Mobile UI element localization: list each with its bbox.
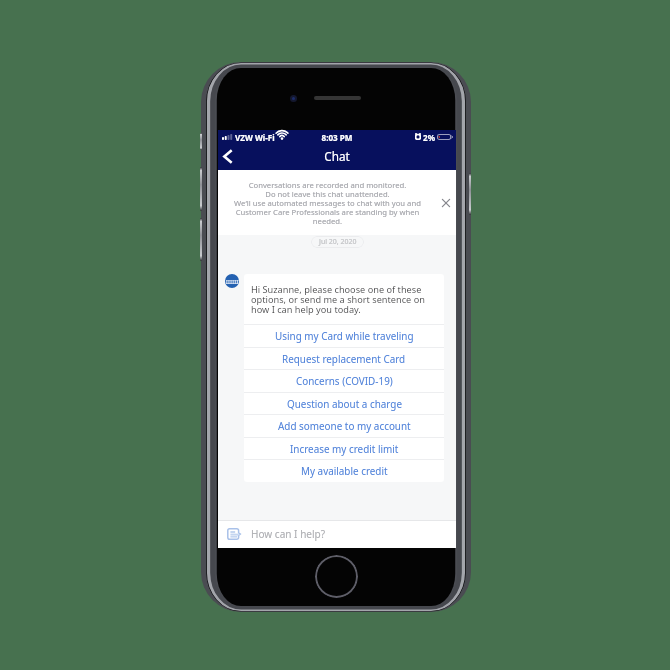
staticText: Question about a charge [287,397,402,410]
staticText: Jul 20, 2020 [319,237,357,247]
button[interactable]: Back [216,142,240,170]
staticText: 8:03 PM [218,132,456,143]
button[interactable]: Using my Card while traveling [244,324,444,347]
button[interactable]: Concerns (COVID-19) [244,369,444,392]
button[interactable]: Close [438,195,454,211]
button[interactable]: Request replacement Card [244,347,444,370]
staticText: Add someone to my account [278,419,411,432]
button[interactable]: Quick replies [225,526,243,542]
staticText: 2% [423,132,435,143]
staticText: Chat [218,148,456,164]
staticText: Using my Card while traveling [275,329,414,342]
button[interactable]: My available credit [244,459,444,482]
staticText: How can I help? [251,527,326,541]
staticText: Request replacement Card [282,352,406,365]
staticText: My available credit [301,464,388,477]
staticText: VZW Wi-Fi [235,132,275,143]
staticText: Increase my credit limit [290,442,399,455]
button[interactable]: Add someone to my account [244,414,444,437]
staticText: Conversations are recorded and monitored… [234,180,421,226]
staticText: Hi Suzanne, please choose one of these o… [251,283,435,316]
button[interactable]: Increase my credit limit [244,437,444,460]
staticText: Concerns (COVID-19) [296,374,393,387]
button[interactable]: Question about a charge [244,392,444,415]
